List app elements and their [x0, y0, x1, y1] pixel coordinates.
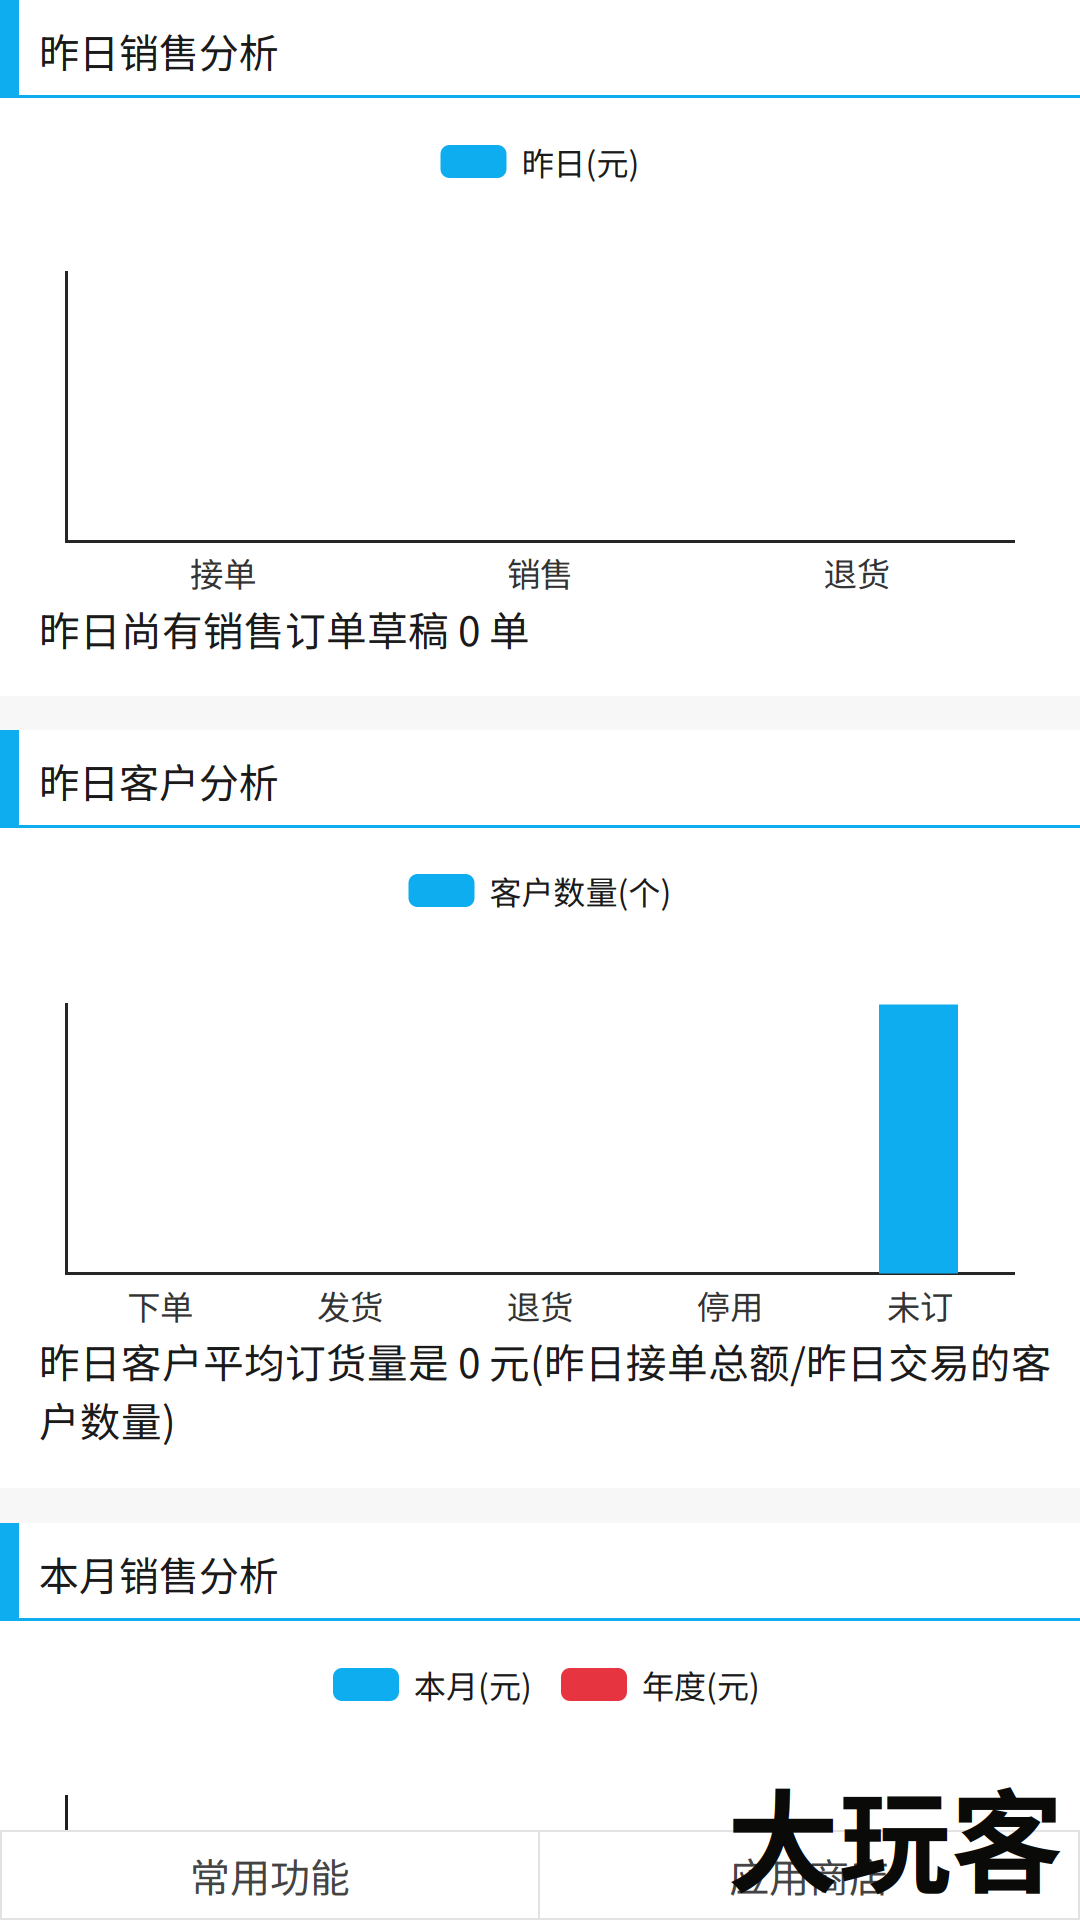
staticText: 昨日客户平均订货量是 0 元(昨日接单总额/昨日交易的客户数量) — [39, 1331, 1052, 1449]
staticText: 本月销售分析 — [39, 1544, 279, 1602]
button[interactable]: 应用商店 — [540, 1832, 1078, 1918]
staticText: 昨日尚有销售订单草稿 0 单 — [39, 599, 530, 658]
staticText: 大玩客 — [727, 1754, 1063, 1916]
staticText: 年度(元) — [642, 1661, 760, 1708]
staticText: 客户数量(个) — [489, 867, 671, 914]
staticText: 昨日客户分析 — [39, 751, 279, 809]
staticText: 停用 — [697, 1281, 763, 1329]
staticText: 应用商店 — [729, 1846, 889, 1904]
staticText: 销售 — [507, 548, 573, 596]
staticText: 常用功能 — [190, 1846, 350, 1904]
staticText: 接单 — [190, 548, 256, 596]
button[interactable]: 常用功能 — [2, 1832, 538, 1918]
staticText: 退货 — [507, 1281, 573, 1329]
staticText: 退货 — [824, 548, 890, 596]
staticText: 本月(元) — [414, 1661, 532, 1708]
staticText: 昨日(元) — [521, 138, 639, 185]
staticText: 下单 — [127, 1281, 193, 1329]
staticText: 发货 — [317, 1281, 383, 1329]
staticText: 未订 — [887, 1281, 953, 1329]
staticText: 昨日销售分析 — [39, 21, 279, 79]
